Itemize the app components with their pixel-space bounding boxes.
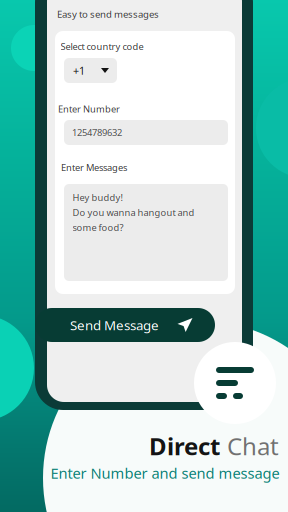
staticText: 1254789632 — [72, 126, 122, 139]
staticText: Enter Messages — [61, 161, 127, 174]
staticText: +1 — [73, 63, 85, 78]
staticText: Hey buddy! — [72, 191, 123, 204]
staticText: Chat — [227, 430, 279, 462]
staticText: Easy to send messages — [57, 7, 159, 21]
staticText: Enter Number and send message — [50, 463, 279, 483]
staticText: Do you wanna hangout and — [72, 206, 194, 219]
staticText: Send Message — [70, 316, 159, 334]
staticText: Enter Number — [58, 103, 120, 115]
button[interactable]: +1 — [64, 58, 117, 83]
staticText: some food? — [72, 221, 123, 234]
staticText: Direct — [149, 430, 220, 462]
staticText: Select country code — [60, 40, 143, 53]
button[interactable]: Send Message — [35, 308, 215, 342]
